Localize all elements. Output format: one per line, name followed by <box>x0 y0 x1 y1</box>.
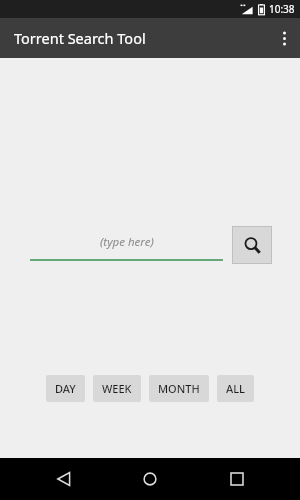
button[interactable]: Home <box>127 458 173 500</box>
button[interactable]: WEEK <box>93 375 141 402</box>
staticText: 10:38 <box>269 2 295 16</box>
button[interactable]: Recent apps <box>214 458 260 500</box>
staticText: (type here) <box>100 234 154 250</box>
staticText: WEEK <box>102 381 132 396</box>
button[interactable]: Back <box>41 458 87 500</box>
button[interactable]: Search <box>232 226 272 264</box>
button[interactable]: MONTH <box>149 375 209 402</box>
staticText: Torrent Search Tool <box>14 28 146 48</box>
button[interactable]: More options <box>268 18 300 58</box>
staticText: DAY <box>55 381 76 396</box>
staticText: ALL <box>226 381 245 396</box>
button[interactable]: ALL <box>217 375 254 402</box>
button[interactable]: (type here) <box>30 229 223 261</box>
staticText: MONTH <box>158 381 200 396</box>
button[interactable]: DAY <box>46 375 85 402</box>
